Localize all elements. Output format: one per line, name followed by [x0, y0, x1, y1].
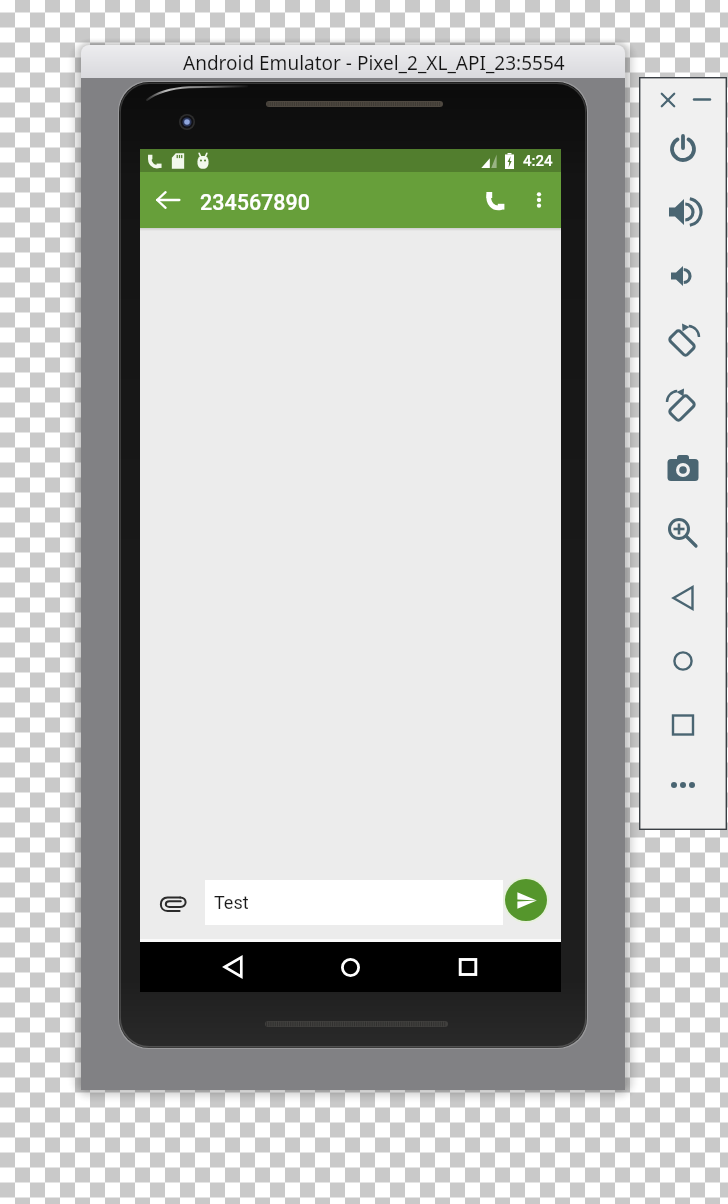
- staticText: 234567890: [200, 190, 310, 215]
- staticText: 4:24: [523, 152, 553, 170]
- button[interactable]: Back: [210, 942, 256, 992]
- button[interactable]: Recent apps: [445, 942, 491, 992]
- staticText: Test: [214, 892, 249, 913]
- button[interactable]: Volume up: [664, 193, 702, 231]
- button[interactable]: Zoom: [664, 512, 702, 550]
- button[interactable]: Rotate right: [664, 386, 702, 424]
- button[interactable]: Rotate left: [664, 321, 702, 359]
- button[interactable]: Back: [664, 579, 702, 617]
- button[interactable]: Minimize: [690, 87, 714, 111]
- button[interactable]: Power: [664, 128, 702, 166]
- button[interactable]: Home: [664, 642, 702, 680]
- button[interactable]: Navigate up: [153, 185, 183, 215]
- button[interactable]: Test: [205, 880, 503, 925]
- button[interactable]: Call: [479, 185, 511, 217]
- staticText: Android Emulator - Pixel_2_XL_API_23:555…: [183, 50, 565, 76]
- button[interactable]: Overview: [664, 706, 702, 744]
- button[interactable]: Attach file: [158, 889, 188, 919]
- button[interactable]: Send: [503, 877, 549, 923]
- button[interactable]: Home: [327, 942, 373, 992]
- button[interactable]: Volume down: [664, 257, 702, 295]
- button[interactable]: Take screenshot: [664, 449, 702, 487]
- button[interactable]: More: [664, 766, 702, 804]
- button[interactable]: More options: [524, 185, 554, 215]
- button[interactable]: Close: [656, 88, 680, 112]
